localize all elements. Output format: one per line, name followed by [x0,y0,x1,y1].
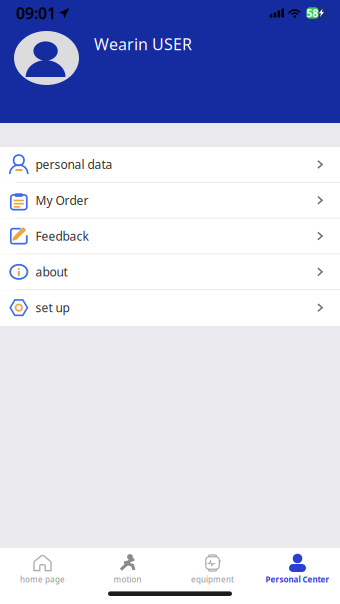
staticText: set up [35,300,69,316]
button[interactable]: motion [85,548,170,585]
button[interactable]: personal data [0,147,340,183]
button[interactable]: home page [0,548,85,585]
button[interactable]: equipment [170,548,255,585]
button[interactable]: about [0,254,340,290]
staticText: motion [113,574,141,585]
staticText: My Order [35,192,88,208]
staticText: Personal Center [265,574,329,585]
staticText: Feedback [35,228,88,244]
staticText: 58 [306,6,318,20]
staticText: personal data [35,156,112,172]
staticText: home page [20,574,65,585]
button[interactable]: Personal Center [255,548,340,585]
staticText: about [35,264,67,280]
button[interactable]: My Order [0,183,340,219]
button[interactable]: Feedback [0,219,340,254]
staticText: Wearin USER [94,33,192,55]
staticText: 09:01 [16,2,56,24]
staticText: equipment [191,574,234,585]
button[interactable]: set up [0,290,340,326]
